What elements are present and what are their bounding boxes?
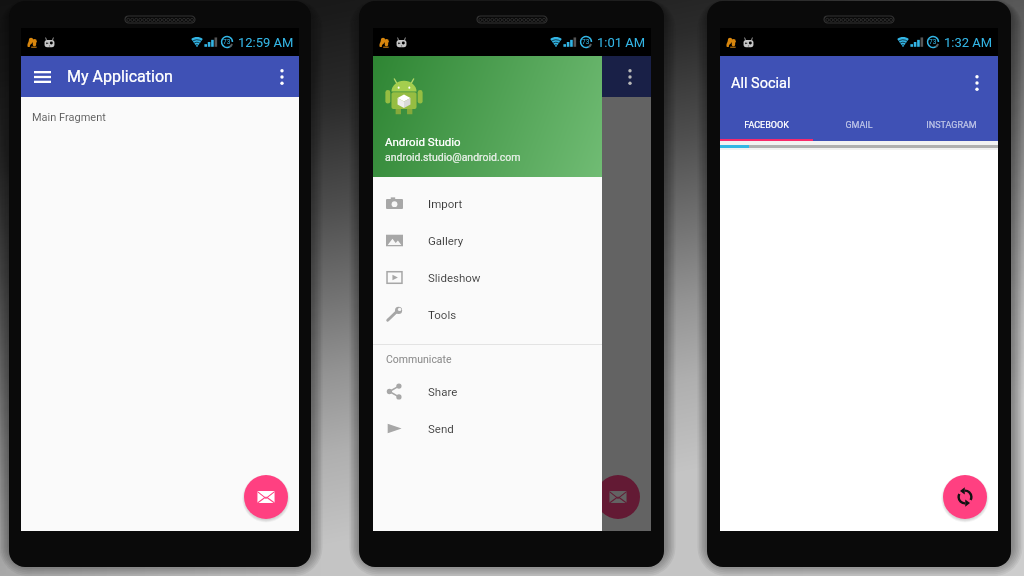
staticText: GMAIL (845, 120, 873, 131)
staticText: Slideshow (428, 271, 481, 284)
staticText: android.studio@android.com (385, 151, 521, 163)
staticText: All Social (731, 75, 791, 92)
staticText: My Application (67, 67, 173, 86)
button[interactable]: Open navigation drawer (29, 64, 55, 90)
button[interactable]: Refresh (943, 475, 987, 519)
staticText: Tools (428, 308, 457, 321)
staticText: 12:59 AM (238, 35, 294, 50)
button[interactable]: Gallery (373, 222, 602, 259)
button[interactable]: Compose email (244, 475, 288, 519)
button[interactable]: More options (617, 64, 643, 90)
button[interactable]: Tools (373, 296, 602, 333)
staticText: 1:01 AM (597, 35, 646, 50)
staticText: 1:32 AM (944, 35, 993, 50)
staticText: Gallery (428, 234, 464, 247)
button[interactable]: Import (373, 185, 602, 222)
staticText: 73 (582, 38, 590, 46)
button[interactable]: More options (964, 70, 990, 96)
button[interactable]: FACEBOOK (720, 110, 812, 141)
button[interactable]: Send (373, 410, 602, 447)
button[interactable]: More options (269, 64, 295, 90)
button[interactable]: GMAIL (812, 110, 905, 141)
staticText: 73 (223, 38, 231, 46)
staticText: Android Studio (385, 135, 461, 148)
button[interactable]: Compose email (596, 475, 640, 519)
staticText: Send (428, 422, 454, 435)
button[interactable]: Share (373, 373, 602, 410)
staticText: INSTAGRAM (926, 120, 977, 131)
staticText: Share (428, 385, 458, 398)
button[interactable]: INSTAGRAM (905, 110, 998, 141)
staticText: Main Fragment (32, 111, 106, 124)
staticText: Import (428, 197, 463, 210)
staticText: FACEBOOK (744, 120, 789, 131)
button[interactable]: Slideshow (373, 259, 602, 296)
staticText: Communicate (386, 353, 452, 365)
staticText: 73 (929, 38, 937, 46)
